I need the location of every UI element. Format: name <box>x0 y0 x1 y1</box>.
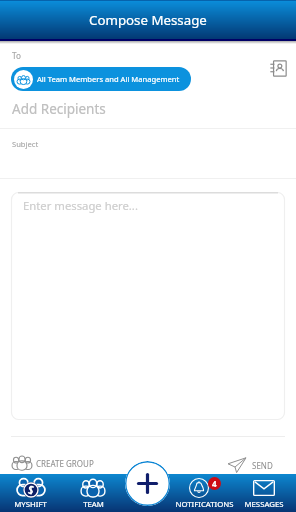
staticText: NOTIFICATIONS <box>175 499 234 510</box>
staticText: MESSAGES <box>244 499 284 510</box>
button[interactable]: MESSAGES <box>230 474 296 512</box>
staticText: 4 <box>212 478 217 489</box>
button[interactable]: Enter message here... <box>11 192 285 420</box>
button[interactable]: CREATE GROUP <box>10 453 96 473</box>
button[interactable]: 4 <box>170 474 238 512</box>
staticText: Compose Message <box>89 11 207 29</box>
button[interactable]: All Team Members and All Management <box>11 67 191 91</box>
staticText: All Team Members and All Management <box>37 74 180 84</box>
button[interactable]: MYSHIFT <box>0 474 64 512</box>
button[interactable]: TEAM <box>59 474 127 512</box>
button[interactable]: SEND <box>225 453 275 477</box>
staticText: SEND <box>252 460 273 471</box>
staticText: MYSHIFT <box>14 499 47 510</box>
button[interactable]: Choose contacts <box>266 56 290 80</box>
staticText: Subject <box>12 139 39 149</box>
button[interactable]: Compose <box>125 461 170 506</box>
staticText: CREATE GROUP <box>36 458 94 469</box>
staticText: To <box>12 50 21 61</box>
staticText: Enter message here... <box>23 198 138 213</box>
staticText: TEAM <box>83 499 104 510</box>
staticText: Add Recipients <box>12 100 106 118</box>
